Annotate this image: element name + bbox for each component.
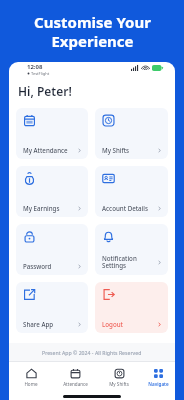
staticText: TestFlight — [31, 71, 50, 76]
button[interactable]: My Attendance — [16, 108, 88, 159]
button[interactable]: My Earnings — [16, 166, 88, 217]
button[interactable]: Account Details — [95, 166, 168, 217]
staticText: 12:08 — [27, 63, 43, 71]
staticText: My Shifts — [109, 381, 129, 387]
staticText: Password — [23, 262, 77, 270]
staticText: Notification Settings — [102, 254, 157, 270]
staticText: Customise Your Experience — [34, 12, 151, 51]
button[interactable]: Logout — [95, 282, 168, 333]
staticText: Home — [24, 381, 38, 387]
staticText: Account Details — [102, 204, 157, 212]
staticText: My Earnings — [23, 204, 77, 212]
button[interactable]: My Shifts — [97, 366, 141, 389]
staticText: Navigate — [148, 381, 169, 387]
button[interactable]: Share App — [16, 282, 88, 333]
staticText: My Attendance — [23, 146, 77, 154]
button[interactable]: My Shifts — [95, 108, 168, 159]
button[interactable]: Navigate — [141, 366, 175, 389]
staticText: Present App © 2024 - All Rights Reserved — [42, 349, 142, 356]
staticText: My Shifts — [102, 146, 157, 154]
button[interactable]: Password — [16, 224, 88, 275]
button[interactable]: Attendance — [53, 366, 97, 389]
staticText: Attendance — [63, 381, 88, 387]
staticText: Hi, Peter! — [18, 83, 72, 99]
button[interactable]: Home — [9, 366, 53, 389]
staticText: Logout — [102, 320, 157, 328]
button[interactable]: Notification Settings — [95, 224, 168, 275]
staticText: Share App — [23, 320, 77, 328]
